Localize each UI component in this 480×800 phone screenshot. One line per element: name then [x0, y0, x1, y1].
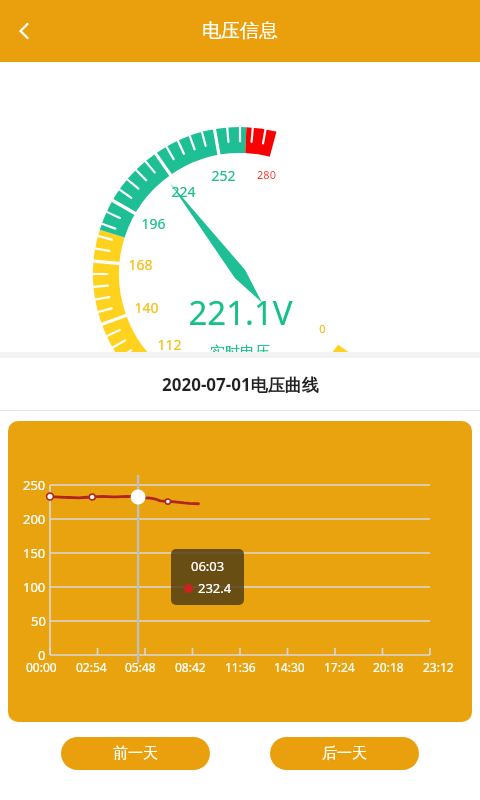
staticText: 280: [257, 167, 276, 182]
staticText: 2020-07-01电压曲线: [162, 373, 319, 396]
staticText: 0: [319, 321, 326, 336]
staticText: 20:18: [373, 659, 404, 675]
staticText: 100: [23, 578, 46, 596]
staticText: 221.1V: [188, 290, 293, 335]
button[interactable]: 前一天: [61, 737, 210, 770]
staticText: 196: [141, 214, 166, 233]
staticText: 05:48: [125, 659, 156, 675]
staticText: 17:24: [324, 659, 355, 675]
button[interactable]: 后一天: [270, 737, 419, 770]
staticText: 28: [282, 351, 299, 370]
staticText: 140: [134, 298, 159, 317]
staticText: 250: [23, 476, 46, 494]
staticText: 前一天: [113, 744, 158, 763]
staticText: 23:12: [423, 659, 454, 675]
button[interactable]: 06:03: [171, 549, 244, 605]
staticText: 56: [241, 364, 258, 383]
staticText: 150: [23, 544, 46, 562]
button[interactable]: Back: [0, 7, 48, 55]
staticText: 02:54: [76, 659, 107, 675]
staticText: 200: [23, 510, 46, 528]
staticText: 14:30: [274, 659, 305, 675]
staticText: 后一天: [322, 744, 367, 763]
staticText: 168: [128, 255, 153, 274]
staticText: 实时电压: [210, 343, 270, 352]
staticText: 0: [38, 646, 46, 664]
staticText: 224: [171, 182, 196, 201]
button[interactable]: 250: [8, 421, 472, 722]
staticText: 电压信息: [202, 19, 278, 43]
staticText: 112: [157, 335, 182, 354]
staticText: 50: [31, 612, 46, 630]
staticText: 06:03: [191, 557, 225, 575]
staticText: 232.4: [198, 579, 232, 597]
staticText: 11:36: [225, 659, 256, 675]
staticText: 08:42: [175, 659, 206, 675]
staticText: 252: [211, 166, 236, 185]
staticText: 00:00: [26, 659, 57, 675]
